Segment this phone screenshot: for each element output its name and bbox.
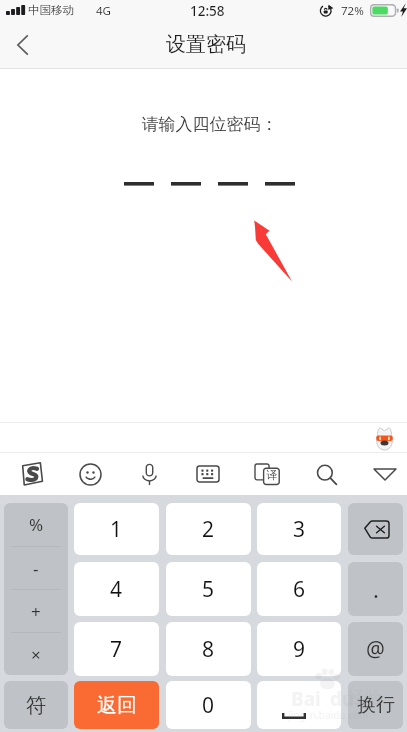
- staticText: .: [373, 574, 379, 604]
- button[interactable]: 换行: [348, 681, 403, 729]
- staticText: 9: [293, 635, 306, 664]
- button[interactable]: 9: [257, 622, 341, 676]
- button[interactable]: 4: [74, 562, 159, 616]
- staticText: +: [31, 600, 41, 623]
- staticText: ×: [31, 643, 41, 666]
- button[interactable]: 5: [166, 562, 251, 616]
- staticText: 4G: [96, 3, 111, 19]
- staticText: 5: [202, 575, 215, 604]
- button[interactable]: Space: [257, 681, 341, 729]
- staticText: @: [366, 635, 385, 664]
- button[interactable]: 符: [4, 681, 68, 729]
- staticText: n.baidu.com: [310, 708, 369, 722]
- button[interactable]: 3: [257, 503, 341, 555]
- button[interactable]: Assistant: [374, 426, 395, 450]
- staticText: du: [330, 686, 355, 712]
- button[interactable]: Search: [300, 453, 352, 495]
- button[interactable]: Sogou keyboard: [5, 453, 57, 495]
- button[interactable]: Back: [0, 20, 47, 69]
- button[interactable]: .: [348, 562, 403, 616]
- button[interactable]: 返回: [74, 681, 159, 729]
- button[interactable]: Translate: [241, 453, 293, 495]
- staticText: 6: [293, 575, 306, 604]
- button[interactable]: 0: [166, 681, 251, 729]
- staticText: 经验: [348, 687, 382, 708]
- button[interactable]: Keyboard layout: [182, 453, 234, 495]
- staticText: 7: [110, 635, 123, 664]
- button[interactable]: Hide keyboard: [359, 453, 407, 495]
- staticText: -: [33, 557, 39, 580]
- staticText: %: [29, 513, 44, 536]
- button[interactable]: Emoji: [64, 453, 116, 495]
- staticText: 12:58: [190, 2, 225, 20]
- button[interactable]: 8: [166, 622, 251, 676]
- button[interactable]: Voice input: [123, 453, 175, 495]
- button[interactable]: %: [4, 503, 68, 546]
- button[interactable]: Delete: [348, 503, 403, 555]
- staticText: 设置密码: [166, 32, 246, 57]
- staticText: 译: [266, 468, 277, 482]
- staticText: 4: [110, 575, 123, 604]
- button[interactable]: @: [348, 622, 403, 676]
- staticText: 3: [293, 515, 306, 544]
- staticText: 0: [202, 691, 215, 720]
- staticText: 符: [26, 693, 46, 718]
- button[interactable]: ×: [4, 633, 68, 675]
- staticText: 1: [110, 515, 123, 544]
- staticText: Bai: [291, 686, 321, 712]
- staticText: 换行: [357, 693, 395, 717]
- staticText: 请输入四位密码：: [6, 114, 407, 135]
- staticText: 72%: [341, 3, 364, 19]
- staticText: 返回: [97, 693, 137, 718]
- button[interactable]: +: [4, 590, 68, 632]
- staticText: 2: [202, 515, 215, 544]
- staticText: jing: [288, 708, 306, 722]
- button[interactable]: -: [4, 547, 68, 589]
- staticText: 中国移动: [28, 3, 74, 17]
- button[interactable]: 1: [74, 503, 159, 555]
- button[interactable]: 6: [257, 562, 341, 616]
- button[interactable]: 2: [166, 503, 251, 555]
- button[interactable]: 7: [74, 622, 159, 676]
- staticText: 8: [202, 635, 215, 664]
